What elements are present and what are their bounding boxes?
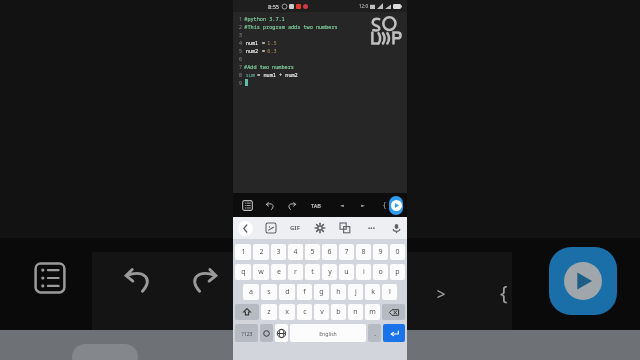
button[interactable]: Undo [122, 262, 156, 296]
button[interactable]: . [368, 324, 381, 342]
button[interactable]: Stickers [266, 223, 276, 233]
button[interactable]: v [314, 304, 329, 320]
staticText: { [498, 280, 510, 306]
button[interactable]: z [261, 304, 277, 320]
staticText: > [436, 282, 447, 305]
button[interactable]: d [279, 284, 295, 300]
staticText: d [285, 287, 290, 297]
button[interactable]: c [297, 304, 312, 320]
staticText: TAB [311, 202, 321, 209]
staticText: 8 [239, 71, 242, 78]
button[interactable]: Right [358, 200, 368, 210]
button[interactable]: x [279, 304, 295, 320]
staticText: 9 [378, 247, 383, 257]
button[interactable]: ?123 [235, 324, 258, 342]
staticText: English [319, 330, 337, 337]
staticText: #Add two numbers [244, 63, 294, 70]
staticText: o [378, 267, 383, 277]
staticText: 5 [310, 247, 315, 257]
button[interactable]: Undo [265, 200, 276, 211]
button[interactable]: e [271, 264, 286, 280]
staticText: n [353, 307, 358, 317]
staticText: ► [361, 203, 365, 208]
staticText: { [382, 200, 387, 210]
button[interactable]: Enter [383, 324, 405, 342]
staticText: 6 [327, 247, 332, 257]
staticText: u [344, 267, 349, 277]
button[interactable]: u [339, 264, 354, 280]
button[interactable]: g [314, 284, 329, 300]
button[interactable]: 8 [356, 244, 371, 260]
button[interactable]: { [379, 200, 389, 210]
button[interactable]: 2 [253, 244, 269, 260]
button[interactable]: p [390, 264, 405, 280]
staticText: = [260, 47, 267, 54]
staticText: x [285, 307, 289, 317]
button[interactable]: w [253, 264, 269, 280]
button[interactable]: j [348, 284, 363, 300]
button[interactable]: Left [337, 200, 347, 210]
button[interactable]: o [373, 264, 388, 280]
button[interactable]: a [243, 284, 259, 300]
button[interactable]: r [288, 264, 303, 280]
staticText: s [267, 287, 271, 297]
button[interactable]: Backspace [382, 304, 405, 320]
button[interactable]: 3 [271, 244, 286, 260]
button[interactable]: Settings [315, 223, 325, 233]
button[interactable]: n [348, 304, 363, 320]
staticText: b [336, 307, 341, 317]
staticText: 6.3 [267, 47, 277, 54]
button[interactable]: 7 [339, 244, 354, 260]
staticText: k [371, 287, 375, 297]
button[interactable]: Menu [32, 260, 68, 296]
button[interactable]: 0 [390, 244, 405, 260]
button[interactable]: 6 [322, 244, 337, 260]
button[interactable]: 1 [235, 244, 251, 260]
button[interactable]: 9 [373, 244, 388, 260]
button[interactable]: 5 [305, 244, 320, 260]
button[interactable]: f [297, 284, 312, 300]
staticText: q [241, 267, 246, 277]
button[interactable]: Redo [186, 262, 220, 296]
staticText: c [303, 307, 307, 317]
button[interactable]: m [365, 304, 380, 320]
button[interactable]: Back [238, 221, 253, 236]
staticText: a [249, 287, 253, 297]
staticText: j [355, 287, 357, 297]
staticText: r [294, 267, 297, 277]
staticText: num1 [244, 39, 260, 46]
button[interactable]: Voice input [391, 223, 402, 234]
button[interactable]: b [331, 304, 346, 320]
button[interactable]: h [331, 284, 346, 300]
button[interactable]: Shift [235, 304, 259, 320]
button[interactable]: l [382, 284, 397, 300]
staticText: p [395, 267, 400, 277]
staticText: t [311, 267, 314, 277]
button[interactable]: i [356, 264, 371, 280]
staticText: 1.5 [267, 39, 277, 46]
staticText: 2 [239, 23, 242, 30]
button[interactable]: s [261, 284, 277, 300]
button[interactable]: 4 [288, 244, 303, 260]
button[interactable]: Redo [286, 200, 297, 211]
staticText: w [258, 267, 264, 277]
button[interactable]: y [322, 264, 337, 280]
staticText: 9 [239, 79, 242, 86]
button[interactable]: ••• [365, 224, 378, 232]
button[interactable]: Outline [242, 200, 253, 211]
button[interactable]: GIF [290, 224, 300, 232]
button[interactable]: t [305, 264, 320, 280]
button[interactable]: Change language [275, 324, 288, 342]
button[interactable]: k [365, 284, 380, 300]
staticText: #python 3.7.1 [244, 15, 285, 22]
button[interactable]: q [235, 264, 251, 280]
button[interactable]: Run [389, 196, 403, 215]
button[interactable]: Emoji [260, 324, 273, 342]
button[interactable]: Translate [340, 223, 350, 233]
staticText: 7 [239, 63, 242, 70]
button[interactable]: English [290, 324, 366, 342]
staticText: 8 [361, 247, 366, 257]
button[interactable]: TAB [309, 200, 323, 211]
staticText: = [260, 39, 267, 46]
button[interactable]: Run [549, 247, 617, 315]
